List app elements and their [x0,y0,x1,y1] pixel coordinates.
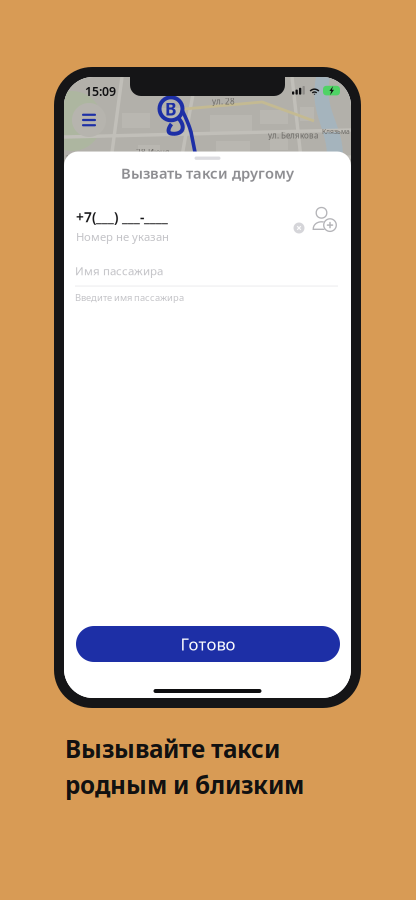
button[interactable]: Очистить номер [286,215,312,241]
staticText: Кузнецкая ул. [66,153,119,164]
staticText: Клязьма [322,127,350,136]
staticText: родным и близким [65,768,304,801]
staticText: Готово [180,633,235,655]
staticText: ул. Белякова [268,130,318,141]
button[interactable]: Меню [72,103,106,137]
staticText: +7(___) ___-____ [76,207,168,226]
staticText: Номер не указан [76,229,169,244]
button[interactable]: Готово [76,626,340,662]
staticText: Вызвать такси другому [121,163,294,183]
staticText: Вызывайте такси [65,732,280,765]
staticText: ул. 28 [212,96,235,107]
staticText: B [165,97,177,121]
staticText: Имя пассажира [75,263,163,279]
staticText: 28 Июня [136,147,170,158]
staticText: Введите имя пассажира [75,291,184,304]
staticText: 15:09 [85,83,116,100]
button[interactable]: Выбрать из контактов [310,205,338,233]
